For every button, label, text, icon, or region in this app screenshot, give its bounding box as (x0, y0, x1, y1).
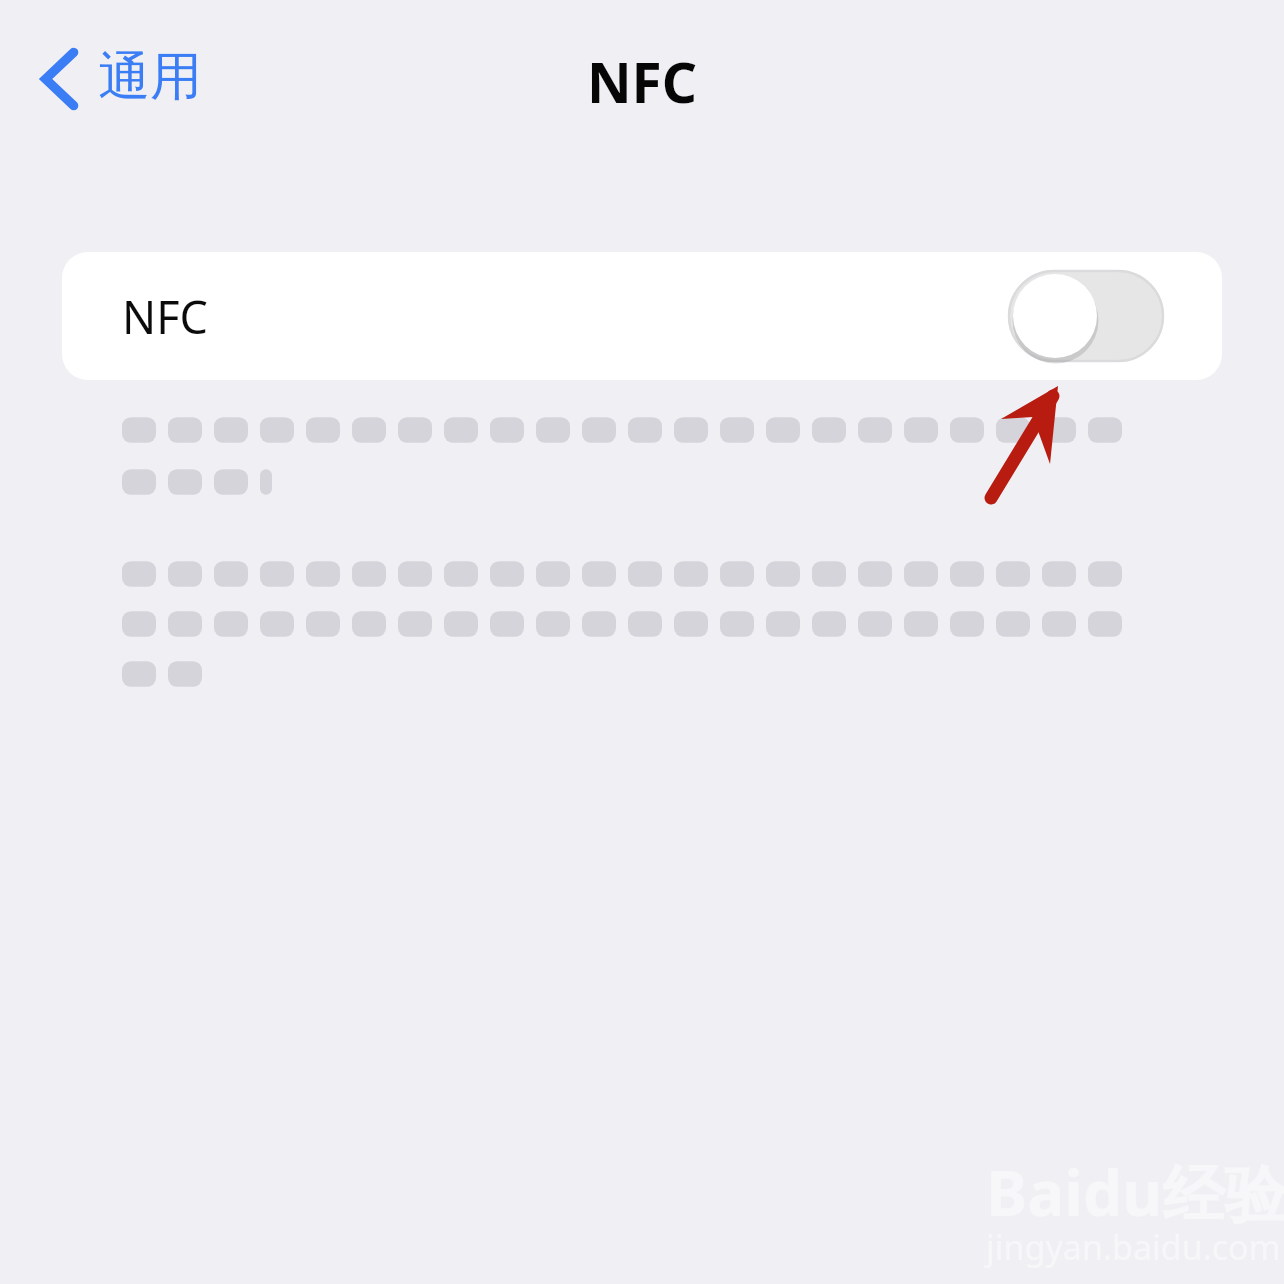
staticText: 通用 (98, 44, 202, 110)
button[interactable]: 返回 通用 (26, 28, 216, 128)
staticText: NFC (0, 44, 1284, 119)
button[interactable]: NFC (62, 252, 1222, 380)
staticText: NFC (122, 286, 208, 347)
staticText: Baidu经验 (986, 1150, 1284, 1235)
button[interactable]: NFC 开关 (1008, 270, 1164, 362)
